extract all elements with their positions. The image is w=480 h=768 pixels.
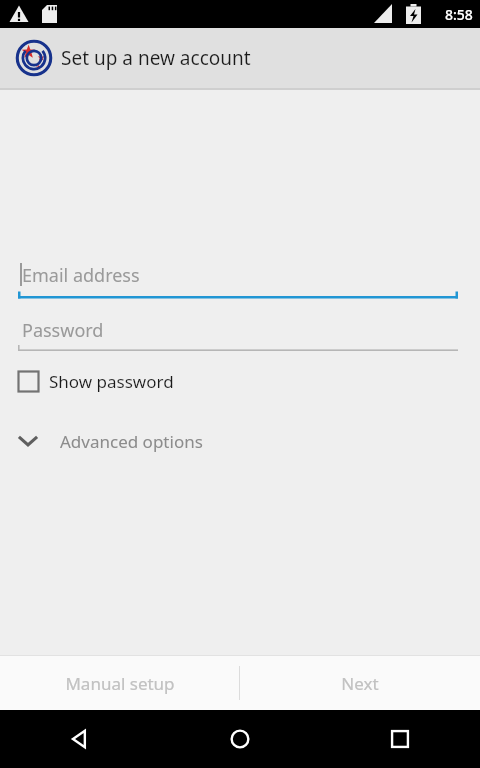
button[interactable]: Password xyxy=(18,318,458,352)
button[interactable]: Email address xyxy=(18,262,458,300)
button[interactable]: Manual setup xyxy=(0,656,239,710)
button[interactable]: Show password xyxy=(0,366,480,397)
staticText: Advanced options xyxy=(60,430,203,453)
other: Expand advanced options xyxy=(16,429,40,453)
button[interactable]: Back xyxy=(0,710,160,768)
staticText: Show password xyxy=(49,370,174,393)
button[interactable]: Recent apps xyxy=(320,710,480,768)
staticText: 8:58 xyxy=(445,5,473,24)
staticText: Manual setup xyxy=(65,672,175,695)
staticText: Email address xyxy=(22,263,140,288)
button[interactable]: Home xyxy=(160,710,320,768)
button[interactable]: Expand advanced options xyxy=(0,423,480,459)
button[interactable]: Next xyxy=(240,656,480,710)
staticText: Password xyxy=(22,318,104,343)
staticText: Set up a new account xyxy=(61,45,251,71)
staticText: Next xyxy=(341,672,379,695)
